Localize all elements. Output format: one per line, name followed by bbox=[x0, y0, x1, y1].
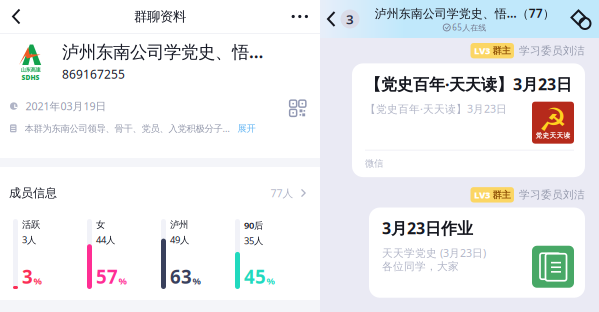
staticText: 869167255 bbox=[62, 66, 125, 82]
staticText: 2021年03月19日 bbox=[25, 99, 106, 113]
staticText: LV3 bbox=[474, 189, 490, 201]
staticText: 3人 bbox=[22, 233, 36, 246]
button[interactable]: Back bbox=[0, 0, 38, 33]
staticText: 党史天天读 bbox=[535, 131, 570, 140]
staticText: % bbox=[192, 275, 200, 287]
staticText: SDHS bbox=[21, 73, 39, 82]
staticText: 群主 bbox=[492, 189, 510, 201]
staticText: 泸州 bbox=[170, 219, 188, 230]
staticText: LV3 bbox=[474, 44, 490, 57]
staticText: 天天学党史 (3月23日) 各位同学，大家 bbox=[382, 246, 486, 273]
staticText: 学习委员刘洁 bbox=[519, 44, 585, 57]
staticText: ☭ bbox=[538, 102, 567, 138]
staticText: 90后 bbox=[244, 219, 263, 231]
staticText: 【党史百年·天天读】3月23日 bbox=[365, 73, 572, 95]
staticText: 35人 bbox=[244, 234, 263, 247]
staticText: 女 bbox=[96, 219, 105, 230]
staticText: 77人 bbox=[270, 186, 293, 200]
staticText: 63 bbox=[170, 264, 192, 289]
staticText: 45 bbox=[244, 264, 266, 289]
staticText: 展开 bbox=[237, 123, 255, 134]
staticText: 57 bbox=[96, 264, 118, 289]
staticText: 活跃 bbox=[22, 219, 40, 230]
staticText: 3月23日作业 bbox=[382, 217, 473, 239]
staticText: % bbox=[118, 275, 126, 287]
button[interactable]: Back bbox=[320, 0, 363, 38]
button[interactable]: More options bbox=[274, 0, 320, 33]
button[interactable]: 山东高速 bbox=[0, 34, 320, 88]
staticText: 群主 bbox=[492, 45, 510, 56]
staticText: 3 bbox=[346, 10, 354, 28]
staticText: 49人 bbox=[170, 233, 189, 246]
staticText: 山东高速 bbox=[20, 66, 40, 73]
button[interactable]: Share bbox=[566, 0, 599, 38]
button[interactable]: 展开 bbox=[237, 123, 255, 134]
staticText: % bbox=[33, 275, 41, 287]
button[interactable]: Group QR code bbox=[289, 99, 306, 116]
staticText: 44人 bbox=[96, 233, 115, 246]
staticText: 学习委员刘洁 bbox=[519, 188, 585, 201]
staticText: % bbox=[266, 275, 274, 287]
staticText: 3 bbox=[22, 264, 33, 289]
staticText: 群聊资料 bbox=[134, 8, 186, 25]
staticText: 泸州东南公司学党史、悟… bbox=[62, 40, 263, 63]
staticText: 微信 bbox=[365, 158, 383, 169]
button[interactable]: 成员信息 bbox=[0, 167, 320, 219]
staticText: 成员信息 bbox=[9, 186, 57, 200]
staticText: 65人在线 bbox=[452, 22, 486, 33]
staticText: 泸州东南公司学党史、悟…（77） bbox=[375, 5, 555, 21]
staticText: 本群为东南公司领导、骨干、党员、入党积极分子… bbox=[24, 122, 229, 135]
staticText: 【党史百年·天天读】3月23日 bbox=[365, 102, 507, 116]
